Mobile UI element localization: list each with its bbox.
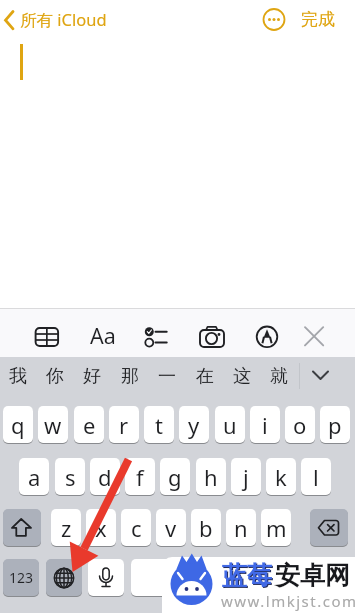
staticText: 所有 iCloud xyxy=(20,8,107,31)
staticText: m xyxy=(266,513,287,543)
staticText: x xyxy=(95,513,107,543)
button[interactable]: 这 xyxy=(225,357,258,395)
button[interactable]: k xyxy=(266,458,296,495)
staticText: 就 xyxy=(270,365,288,388)
button[interactable]: u xyxy=(215,406,245,443)
staticText: j xyxy=(243,462,249,492)
button[interactable]: 那 xyxy=(113,357,146,395)
button[interactable]: 一 xyxy=(150,357,183,395)
staticText: b xyxy=(199,513,213,543)
button[interactable]: n xyxy=(226,509,256,546)
staticText: 你 xyxy=(46,365,64,388)
staticText: www.lmkjst.com xyxy=(221,591,355,611)
staticText: p xyxy=(328,410,342,440)
staticText: y xyxy=(188,410,200,440)
button[interactable] xyxy=(3,509,41,546)
staticText: 在 xyxy=(196,365,214,388)
staticText: l xyxy=(313,462,319,492)
staticText: r xyxy=(119,410,129,440)
staticText: s xyxy=(65,462,76,492)
button[interactable]: h xyxy=(196,458,226,495)
button[interactable]: b xyxy=(191,509,221,546)
staticText: a xyxy=(28,462,41,492)
button[interactable]: v xyxy=(156,509,186,546)
button[interactable]: c xyxy=(121,509,151,546)
staticText: i xyxy=(262,410,268,440)
button[interactable]: 完成 xyxy=(295,0,341,39)
button[interactable]: j xyxy=(231,458,261,495)
staticText: q xyxy=(11,410,25,440)
staticText: 完成 xyxy=(301,9,335,30)
staticText: Aa xyxy=(90,321,116,350)
button[interactable]: s xyxy=(55,458,85,495)
button[interactable]: r xyxy=(109,406,139,443)
button[interactable]: a xyxy=(19,458,49,495)
button[interactable]: g xyxy=(160,458,190,495)
button[interactable]: 在 xyxy=(188,357,221,395)
button[interactable]: t xyxy=(144,406,174,443)
staticText: 一 xyxy=(158,365,176,388)
staticText: w xyxy=(44,410,62,440)
button[interactable] xyxy=(29,317,63,353)
button[interactable]: 好 xyxy=(75,357,108,395)
button[interactable]: 就 xyxy=(262,357,295,395)
staticText: g xyxy=(168,462,182,492)
staticText: 蓝莓 xyxy=(223,561,273,592)
staticText: v xyxy=(165,513,177,543)
button[interactable] xyxy=(300,319,330,351)
button[interactable] xyxy=(131,559,249,596)
button[interactable] xyxy=(88,559,124,596)
staticText: d xyxy=(98,462,112,492)
button[interactable]: 123 xyxy=(3,559,39,596)
button[interactable]: w xyxy=(38,406,68,443)
button[interactable]: p xyxy=(320,406,350,443)
button[interactable]: x xyxy=(86,509,116,546)
staticText: 安卓网 xyxy=(275,560,350,591)
staticText: u xyxy=(223,410,237,440)
button[interactable]: q xyxy=(3,406,33,443)
button[interactable] xyxy=(258,3,290,35)
button[interactable]: m xyxy=(261,509,291,546)
staticText: f xyxy=(136,462,144,492)
staticText: 123 xyxy=(9,568,34,587)
button[interactable]: d xyxy=(90,458,120,495)
button[interactable]: e xyxy=(74,406,104,443)
button[interactable] xyxy=(253,317,287,353)
button[interactable]: 所有 iCloud xyxy=(0,0,140,39)
button[interactable] xyxy=(46,559,82,596)
staticText: h xyxy=(204,462,218,492)
button[interactable]: 你 xyxy=(38,357,71,395)
staticText: n xyxy=(234,513,248,543)
button[interactable] xyxy=(299,357,349,395)
staticText: 那 xyxy=(121,365,139,388)
staticText: 好 xyxy=(83,365,101,388)
staticText: 我 xyxy=(9,365,27,388)
button[interactable]: i xyxy=(250,406,280,443)
button[interactable]: Aa xyxy=(86,317,120,353)
staticText: z xyxy=(61,513,72,543)
staticText: c xyxy=(131,513,142,543)
staticText: k xyxy=(275,462,287,492)
button[interactable]: 我 xyxy=(1,357,34,395)
staticText: 蓝莓 xyxy=(222,560,272,591)
button[interactable] xyxy=(310,509,348,546)
staticText: e xyxy=(83,410,96,440)
button[interactable] xyxy=(140,317,174,353)
staticText: o xyxy=(293,410,307,440)
staticText: 这 xyxy=(233,365,251,388)
button[interactable]: f xyxy=(125,458,155,495)
button[interactable]: y xyxy=(179,406,209,443)
button[interactable]: l xyxy=(301,458,331,495)
button[interactable]: o xyxy=(285,406,315,443)
button[interactable] xyxy=(196,317,230,353)
staticText: t xyxy=(155,410,163,440)
button[interactable]: z xyxy=(51,509,81,546)
